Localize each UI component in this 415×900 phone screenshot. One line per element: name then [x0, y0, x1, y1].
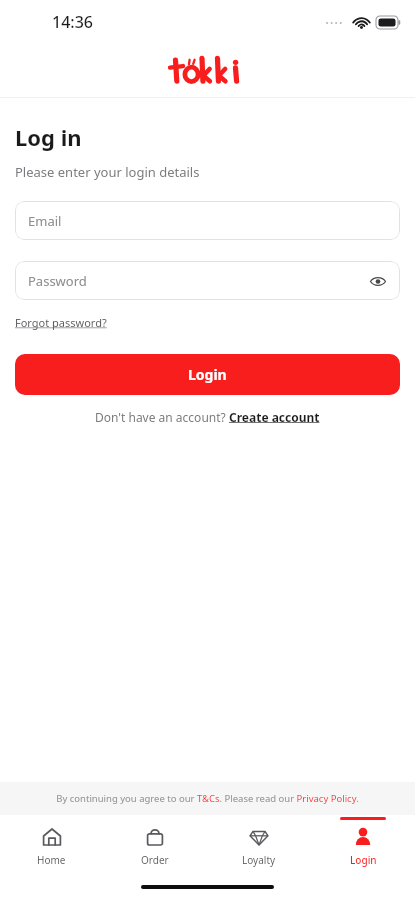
- staticText: Don't have an account?: [95, 409, 229, 425]
- button[interactable]: Home: [0, 815, 103, 873]
- button[interactable]: Order: [103, 815, 207, 873]
- button[interactable]: By continuing you agree to our T&Cs. Ple…: [56, 792, 359, 805]
- staticText: Login: [350, 853, 377, 867]
- staticText: Login: [188, 365, 227, 384]
- staticText: 14:36: [52, 11, 93, 33]
- staticText: Create account: [229, 409, 320, 425]
- button[interactable]: Email: [15, 201, 400, 240]
- staticText: Log in: [15, 122, 82, 152]
- staticText: Loyalty: [242, 853, 276, 867]
- staticText: Password: [28, 272, 87, 290]
- button[interactable]: Login: [15, 354, 400, 395]
- staticText: Forgot password?: [15, 315, 107, 330]
- staticText: Please enter your login details: [15, 163, 200, 181]
- button[interactable]: Login: [311, 815, 415, 873]
- staticText: Email: [28, 212, 62, 230]
- staticText: Order: [141, 853, 169, 867]
- button[interactable]: Password: [15, 261, 400, 300]
- button[interactable]: Loyalty: [207, 815, 311, 873]
- staticText: Home: [37, 853, 66, 867]
- button[interactable]: Forgot password?: [15, 314, 107, 331]
- other: tokki logo: [165, 54, 251, 88]
- button[interactable]: Show password: [367, 270, 389, 292]
- button[interactable]: Don't have an account?: [95, 409, 320, 425]
